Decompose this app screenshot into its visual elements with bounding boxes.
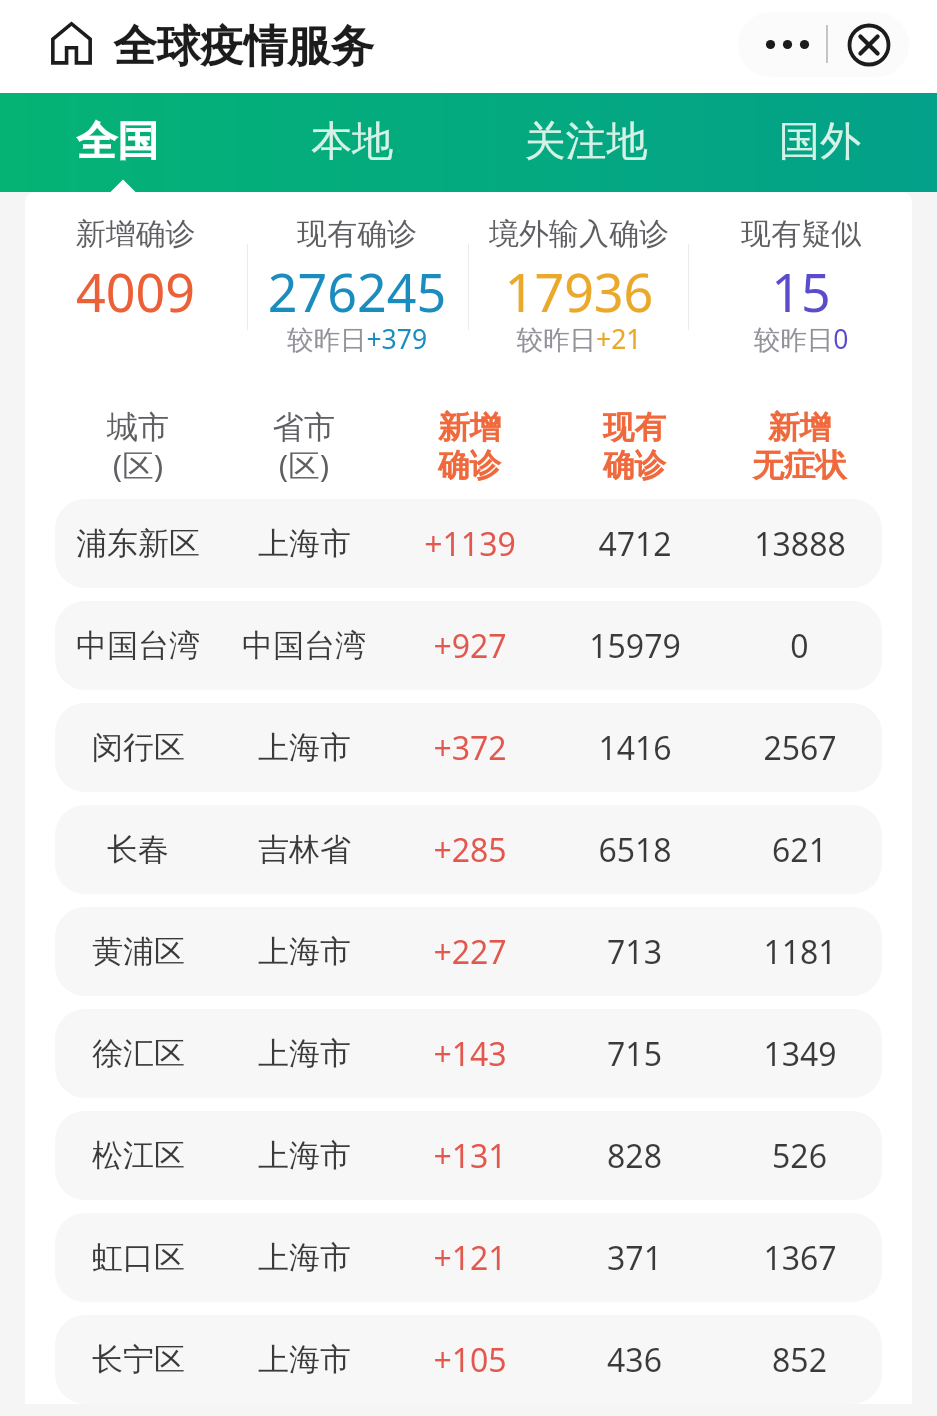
- button[interactable]: 闵行区: [55, 703, 882, 792]
- staticText: 上海市: [258, 1340, 351, 1379]
- staticText: 1416: [598, 726, 672, 770]
- staticText: 黄浦区: [92, 932, 185, 971]
- button[interactable]: 长宁区: [55, 1315, 882, 1404]
- staticText: 境外输入确诊: [468, 215, 690, 253]
- staticText: 13888: [754, 522, 846, 566]
- staticText: 0: [790, 624, 809, 668]
- staticText: 现有确诊: [246, 215, 468, 253]
- staticText: 526: [772, 1134, 827, 1178]
- button[interactable]: 长春: [55, 805, 882, 894]
- staticText: 1181: [763, 930, 837, 974]
- staticText: 较昨日+379: [246, 321, 468, 357]
- staticText: 新增确诊: [25, 215, 246, 253]
- staticText: 621: [772, 828, 827, 872]
- staticText: 本地: [235, 116, 469, 168]
- staticText: 上海市: [258, 1136, 351, 1175]
- staticText: 4009: [25, 256, 246, 327]
- staticText: 全球疫情服务: [113, 19, 374, 74]
- staticText: 长宁区: [92, 1340, 185, 1379]
- button[interactable]: 现有确诊: [246, 192, 468, 370]
- staticText: 上海市: [258, 728, 351, 767]
- staticText: 15: [690, 256, 912, 327]
- staticText: 虹口区: [92, 1238, 185, 1277]
- staticText: 15979: [589, 624, 681, 668]
- staticText: 长春: [107, 830, 169, 869]
- button[interactable]: Close: [828, 12, 909, 77]
- button[interactable]: 松江区: [55, 1111, 882, 1200]
- staticText: +143: [433, 1032, 507, 1076]
- button[interactable]: 新增确诊: [25, 192, 246, 370]
- staticText: 中国台湾: [76, 626, 200, 665]
- staticText: 828: [607, 1134, 662, 1178]
- staticText: 6518: [598, 828, 672, 872]
- staticText: 全国: [0, 116, 235, 168]
- staticText: 上海市: [258, 1034, 351, 1073]
- staticText: 上海市: [258, 932, 351, 971]
- button[interactable]: More options: [738, 12, 826, 77]
- staticText: 1367: [763, 1236, 837, 1280]
- staticText: 276245: [246, 256, 468, 327]
- staticText: +121: [433, 1236, 507, 1280]
- staticText: 城市 (区): [55, 408, 221, 487]
- staticText: 关注地: [469, 116, 703, 168]
- staticText: 现有 确诊: [552, 408, 717, 485]
- staticText: 371: [607, 1236, 662, 1280]
- button[interactable]: 浦东新区: [55, 499, 882, 588]
- staticText: 徐汇区: [92, 1034, 185, 1073]
- staticText: +927: [433, 624, 507, 668]
- staticText: 17936: [468, 256, 690, 327]
- button[interactable]: 本地: [235, 93, 469, 192]
- button[interactable]: 现有疑似: [690, 192, 912, 370]
- staticText: 较昨日+21: [468, 321, 690, 357]
- staticText: 上海市: [258, 524, 351, 563]
- staticText: 852: [772, 1338, 827, 1382]
- staticText: 松江区: [92, 1136, 185, 1175]
- staticText: 4712: [598, 522, 672, 566]
- staticText: +372: [433, 726, 507, 770]
- staticText: 713: [607, 930, 662, 974]
- staticText: 吉林省: [258, 830, 351, 869]
- staticText: 浦东新区: [76, 524, 200, 563]
- button[interactable]: 国外: [703, 93, 937, 192]
- staticText: 闵行区: [92, 728, 185, 767]
- button[interactable]: 全国: [0, 93, 235, 192]
- staticText: +131: [433, 1134, 507, 1178]
- staticText: 2567: [763, 726, 837, 770]
- staticText: 较昨日0: [690, 321, 912, 357]
- staticText: +105: [433, 1338, 507, 1382]
- button[interactable]: 境外输入确诊: [468, 192, 690, 370]
- button[interactable]: 黄浦区: [55, 907, 882, 996]
- staticText: 715: [607, 1032, 662, 1076]
- button[interactable]: 中国台湾: [55, 601, 882, 690]
- staticText: 国外: [703, 116, 937, 168]
- staticText: 新增 确诊: [387, 408, 552, 485]
- staticText: 1349: [763, 1032, 837, 1076]
- button[interactable]: 徐汇区: [55, 1009, 882, 1098]
- staticText: 现有疑似: [690, 215, 912, 253]
- staticText: +285: [433, 828, 507, 872]
- staticText: 新增 无症状: [717, 408, 882, 485]
- staticText: 上海市: [258, 1238, 351, 1277]
- button[interactable]: 虹口区: [55, 1213, 882, 1302]
- button[interactable]: Home: [41, 12, 101, 74]
- button[interactable]: 关注地: [469, 93, 703, 192]
- staticText: 436: [607, 1338, 662, 1382]
- staticText: +1139: [424, 522, 516, 566]
- staticText: 省市 (区): [221, 408, 387, 487]
- staticText: 中国台湾: [242, 626, 366, 665]
- staticText: +227: [433, 930, 507, 974]
